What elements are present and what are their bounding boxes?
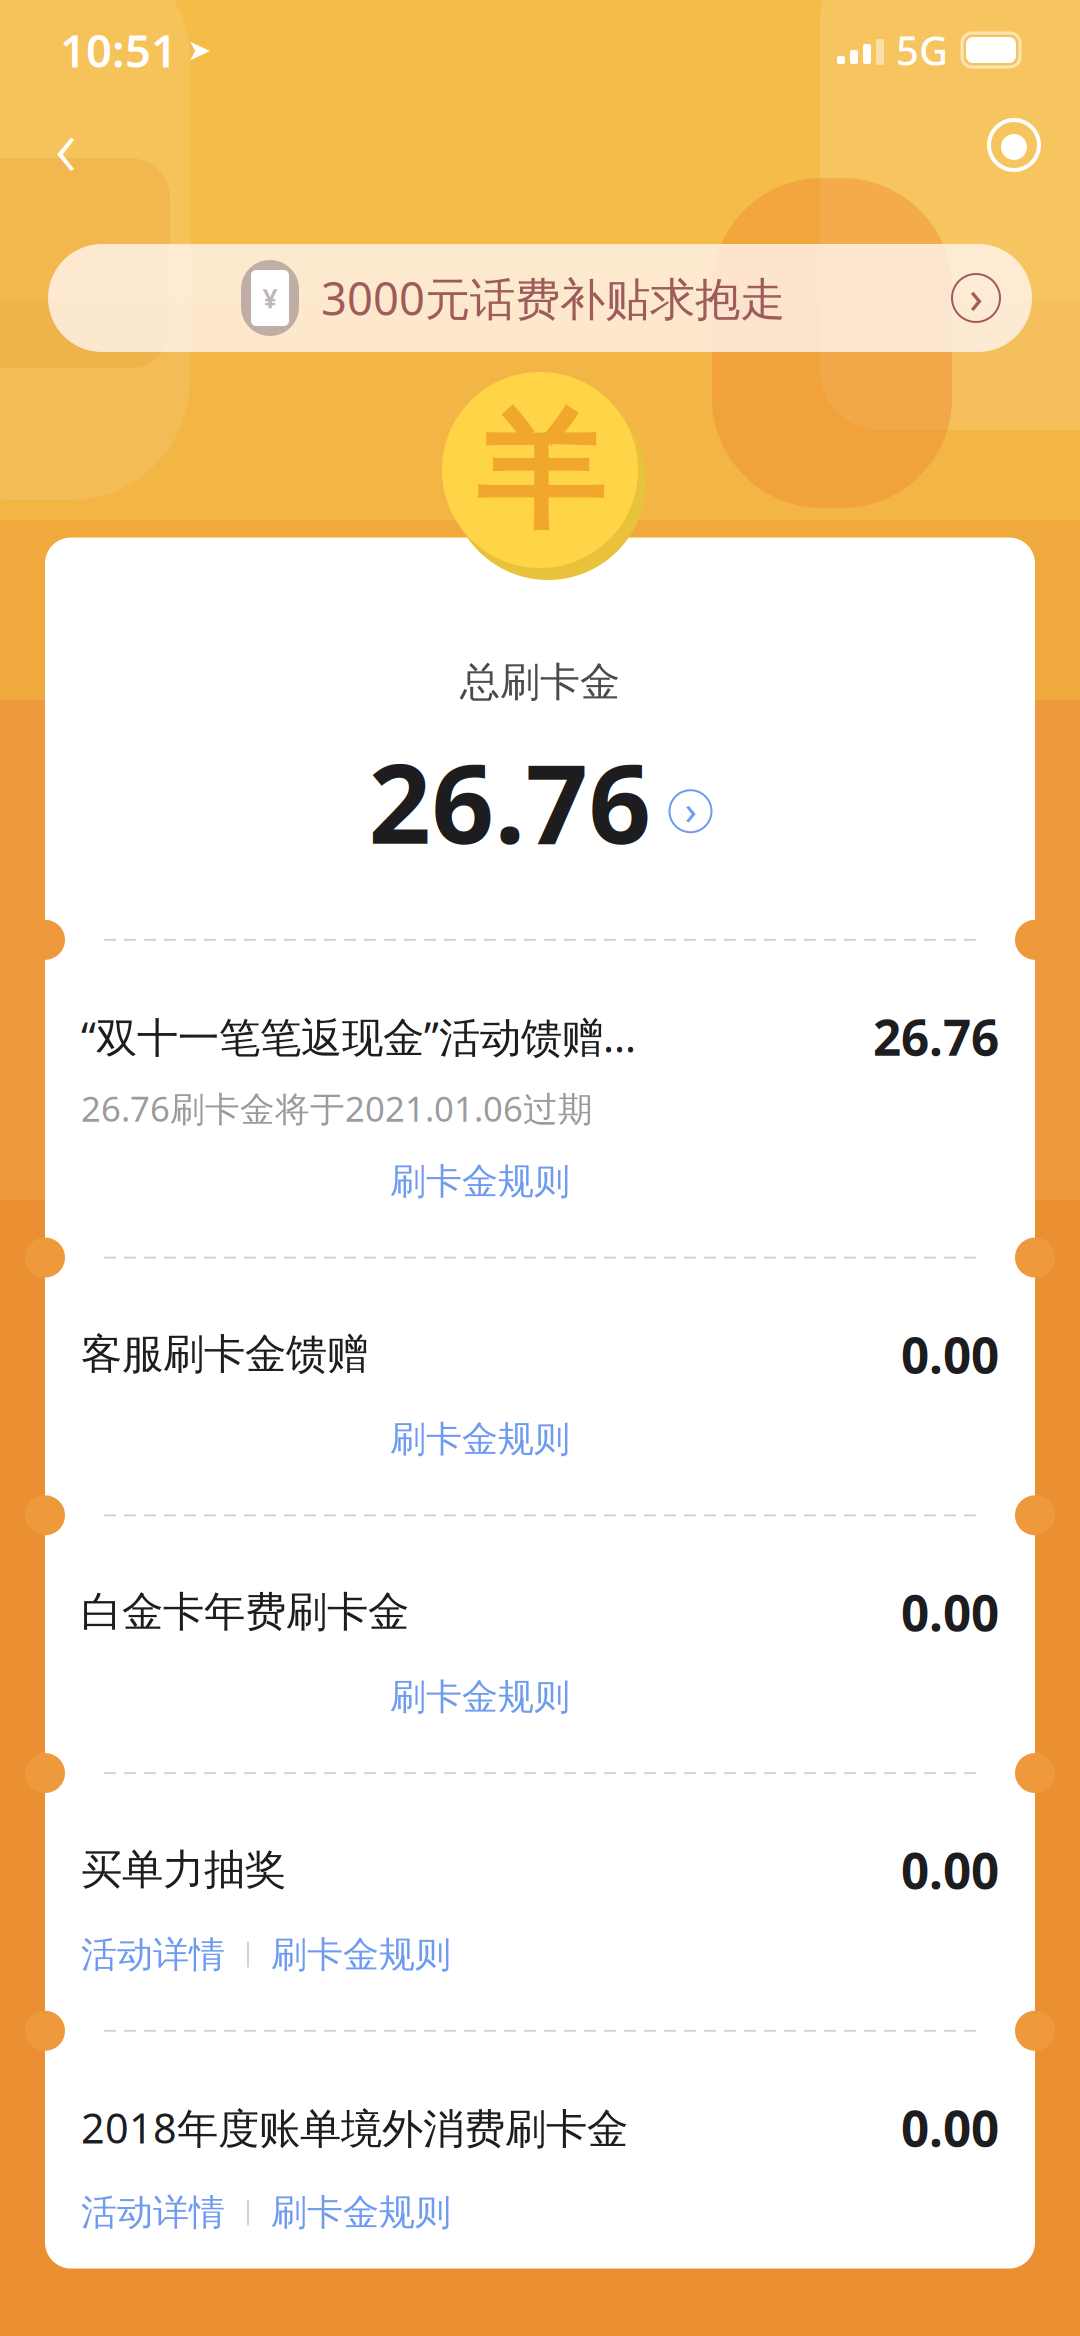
button[interactable]: 26.76	[368, 707, 711, 874]
button[interactable]: 返回	[26, 105, 106, 185]
staticText: 0.00	[901, 1837, 999, 1902]
staticText: 3000元话费补贴求抱走	[321, 268, 785, 328]
staticText: 白金卡年费刷卡金	[81, 1587, 409, 1637]
button[interactable]: 刷卡金规则	[271, 2190, 451, 2234]
staticText: 10:51	[60, 20, 177, 80]
staticText: 活动详情	[81, 2190, 225, 2234]
staticText: 0.00	[901, 1322, 999, 1387]
staticText: ›	[684, 783, 696, 836]
staticText: 5G	[896, 23, 948, 76]
staticText: ¥	[262, 280, 277, 316]
button[interactable]: 活动详情	[81, 1933, 225, 1977]
staticText: 买单力抽奖	[81, 1844, 286, 1895]
staticText: 刷卡金规则	[390, 1675, 570, 1719]
staticText: 刷卡金规则	[390, 1159, 570, 1204]
staticText: 0.00	[901, 2095, 999, 2160]
staticText: 2018年度账单境外消费刷卡金	[81, 2100, 628, 2155]
staticText: “双十一笔笔返现金”活动馈赠...	[81, 1009, 636, 1064]
staticText: 总刷卡金	[460, 657, 620, 707]
button[interactable]: 刷卡金规则	[390, 1675, 570, 1719]
staticText: 26.76刷卡金将于2021.01.06过期	[81, 1085, 593, 1131]
staticText: ‹	[55, 90, 77, 200]
staticText: 0.00	[901, 1579, 999, 1645]
staticText: ›	[969, 266, 983, 326]
button[interactable]: ¥	[48, 244, 1032, 352]
staticText: ➤	[187, 33, 212, 67]
button[interactable]: 活动详情	[81, 2190, 225, 2234]
staticText: 26.76	[368, 729, 651, 874]
staticText: 刷卡金规则	[390, 1417, 570, 1461]
button[interactable]: 客服	[974, 105, 1054, 185]
staticText: 客服刷卡金馈赠	[81, 1329, 368, 1380]
staticText: 羊	[476, 393, 604, 551]
staticText: 26.76	[873, 1004, 999, 1069]
button[interactable]: 刷卡金规则	[390, 1417, 570, 1461]
staticText: 活动详情	[81, 1933, 225, 1977]
button[interactable]: 刷卡金规则	[271, 1933, 451, 1977]
staticText: 刷卡金规则	[271, 2190, 451, 2234]
staticText: 刷卡金规则	[271, 1933, 451, 1977]
button[interactable]: 刷卡金规则	[390, 1159, 570, 1204]
